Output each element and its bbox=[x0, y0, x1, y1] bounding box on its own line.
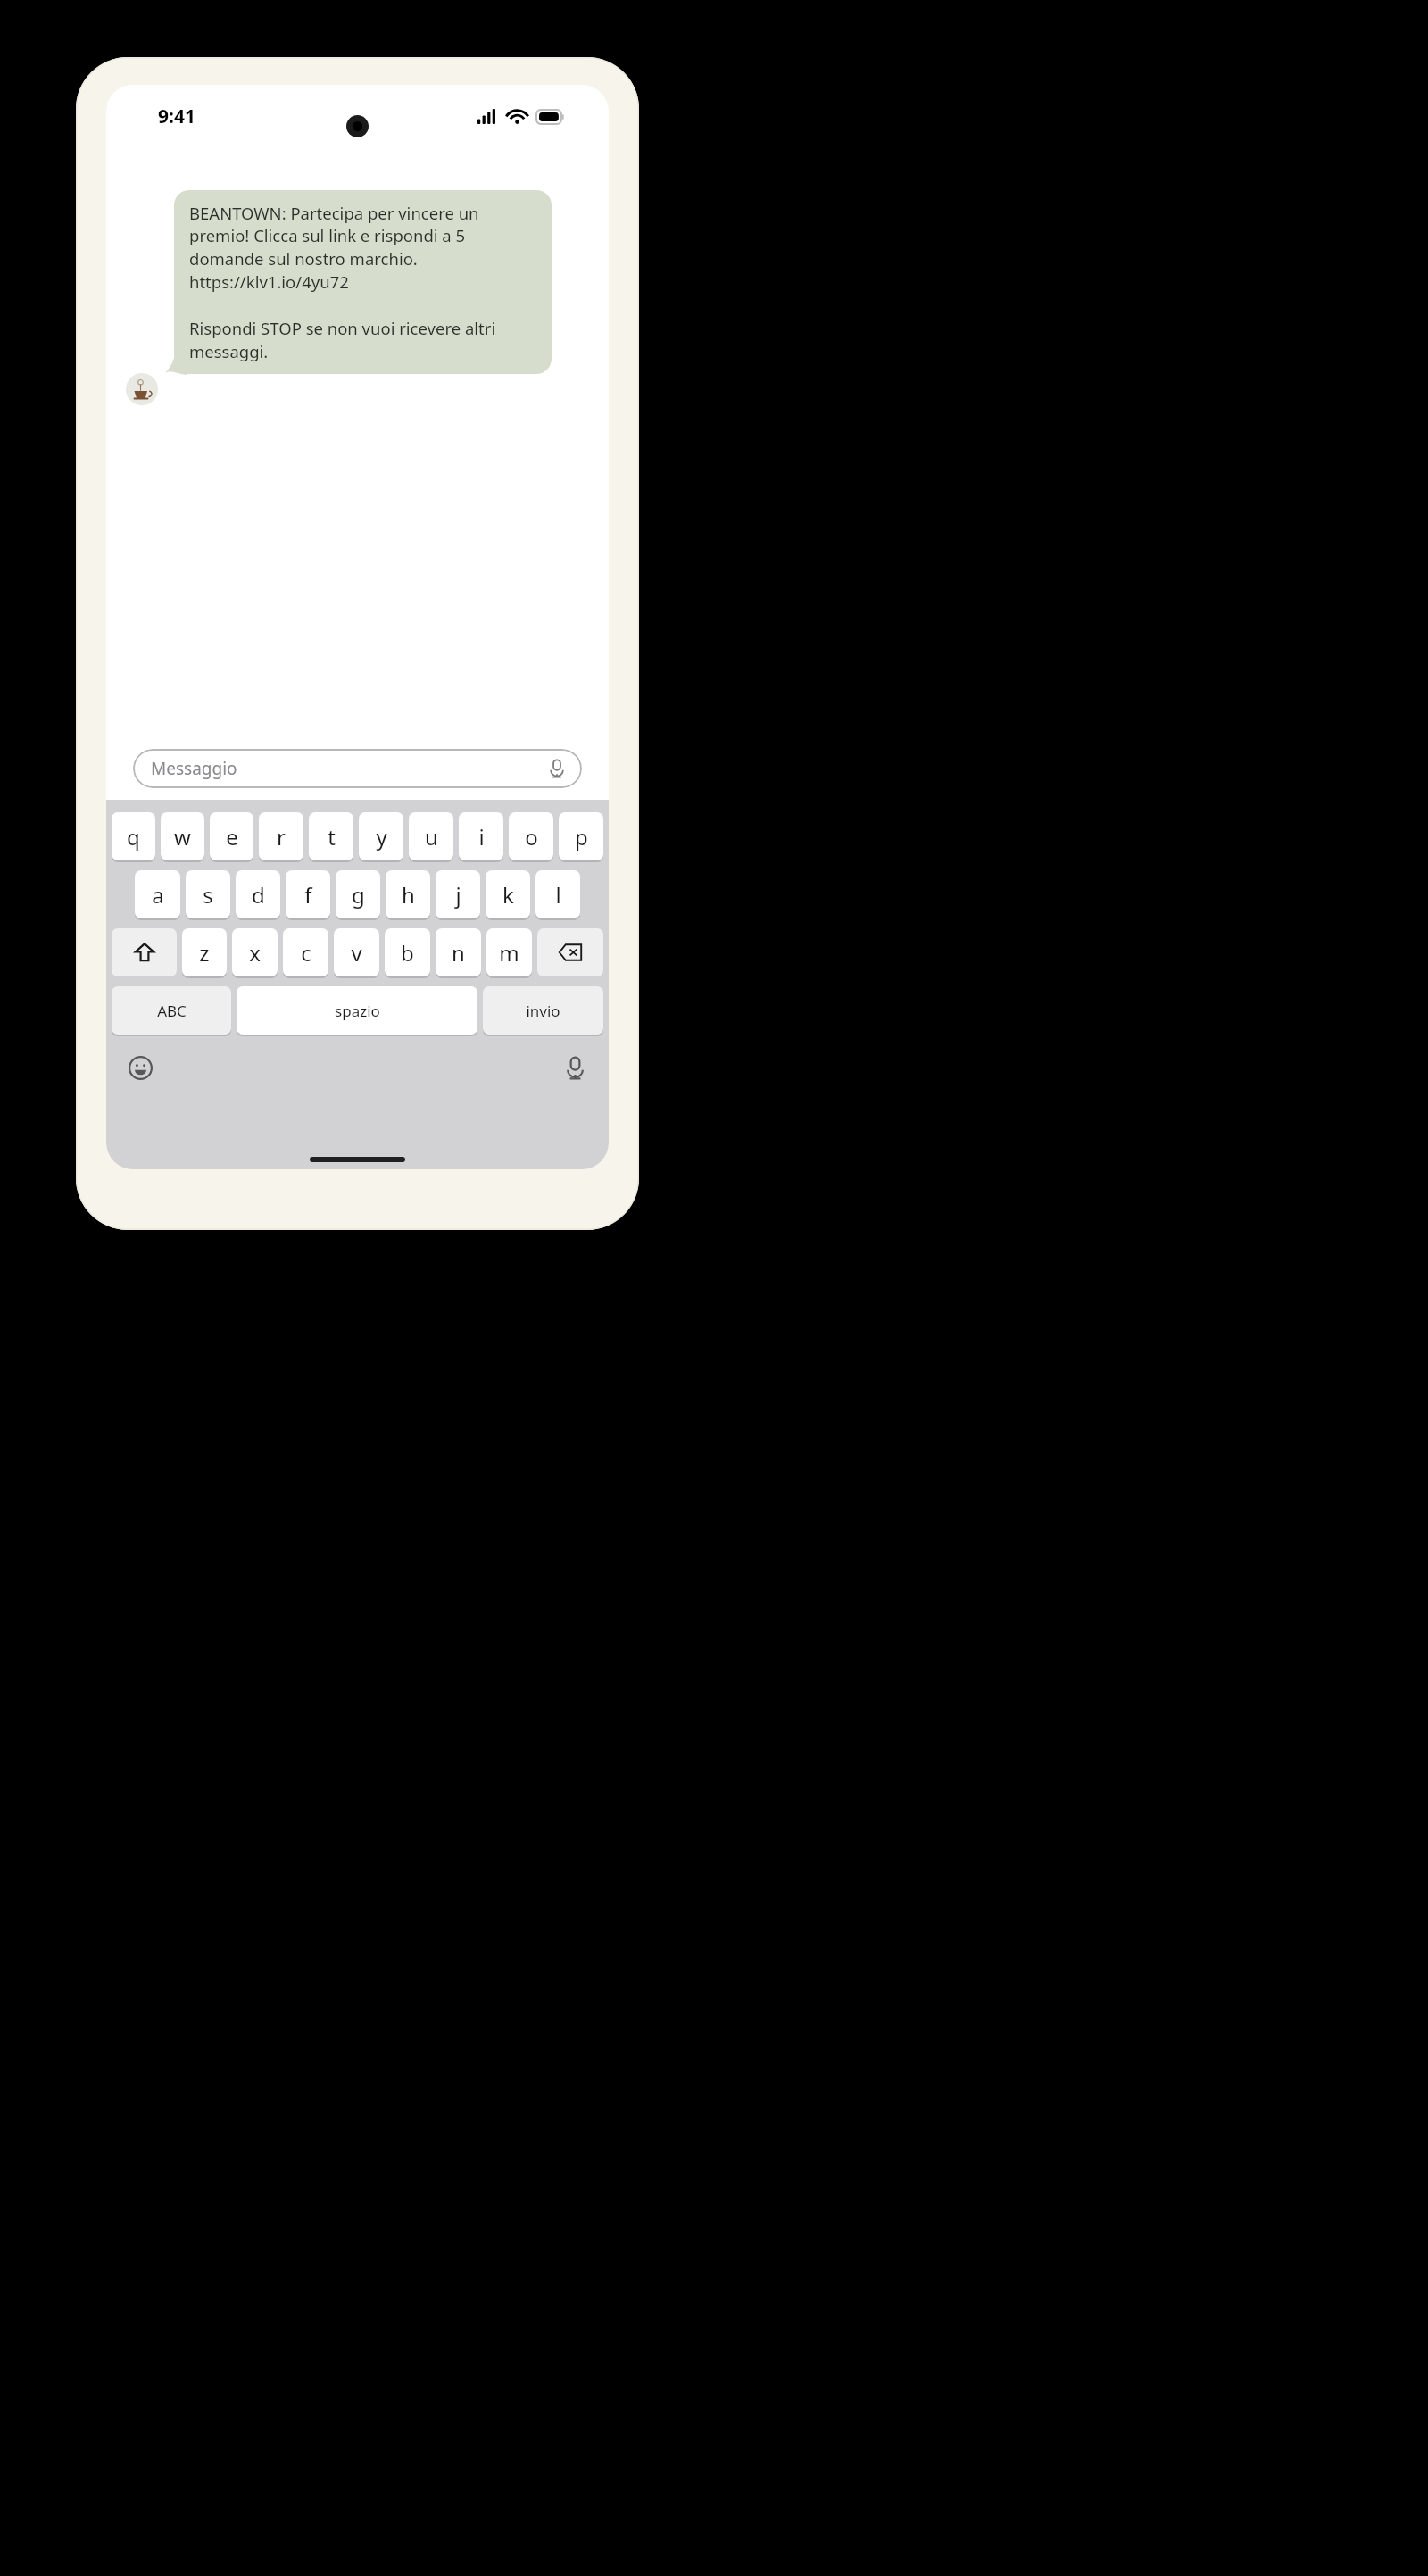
button[interactable]: y bbox=[359, 812, 403, 860]
button[interactable]: j bbox=[436, 870, 480, 918]
button[interactable]: BEANTOWN: Partecipa per vincere un premi… bbox=[174, 190, 552, 374]
button[interactable]: x bbox=[232, 928, 278, 976]
staticText: q bbox=[127, 822, 140, 852]
staticText: f bbox=[304, 880, 312, 910]
button[interactable]: h bbox=[386, 870, 430, 918]
staticText: r bbox=[277, 822, 286, 852]
button[interactable]: spazio bbox=[237, 986, 477, 1035]
button[interactable]: Backspace bbox=[537, 928, 603, 976]
staticText: a bbox=[152, 880, 164, 910]
button[interactable]: ABC bbox=[112, 986, 231, 1035]
button[interactable]: w bbox=[161, 812, 204, 860]
button[interactable]: d bbox=[236, 870, 280, 918]
button[interactable]: p bbox=[559, 812, 603, 860]
staticText: o bbox=[525, 822, 538, 852]
button[interactable]: s bbox=[186, 870, 230, 918]
staticText: spazio bbox=[335, 1001, 380, 1021]
button[interactable]: Voice input bbox=[544, 756, 569, 781]
button[interactable]: b bbox=[385, 928, 430, 976]
staticText: BEANTOWN: Partecipa per vincere un premi… bbox=[189, 202, 536, 362]
button[interactable]: Emoji bbox=[122, 1050, 158, 1085]
staticText: 9:41 bbox=[158, 104, 195, 129]
staticText: m bbox=[499, 938, 519, 968]
staticText: s bbox=[203, 880, 213, 910]
button[interactable]: f bbox=[286, 870, 330, 918]
button[interactable]: Shift bbox=[112, 928, 177, 976]
staticText: t bbox=[328, 822, 336, 852]
button[interactable]: v bbox=[334, 928, 379, 976]
button[interactable]: a bbox=[135, 870, 180, 918]
staticText: k bbox=[502, 880, 514, 910]
button[interactable]: r bbox=[259, 812, 303, 860]
button[interactable]: z bbox=[182, 928, 227, 976]
button[interactable]: c bbox=[283, 928, 328, 976]
button[interactable]: l bbox=[535, 870, 580, 918]
staticText: y bbox=[376, 822, 387, 852]
button[interactable]: Voice typing bbox=[557, 1050, 593, 1085]
staticText: b bbox=[401, 938, 414, 968]
staticText: g bbox=[352, 880, 365, 910]
staticText: h bbox=[402, 880, 415, 910]
staticText: Messaggio bbox=[151, 757, 237, 780]
staticText: j bbox=[455, 880, 461, 910]
staticText: ABC bbox=[157, 1001, 187, 1021]
staticText: w bbox=[174, 822, 191, 852]
button[interactable]: o bbox=[509, 812, 553, 860]
button[interactable]: g bbox=[336, 870, 380, 918]
staticText: e bbox=[226, 822, 238, 852]
button[interactable]: t bbox=[309, 812, 353, 860]
button[interactable]: i bbox=[459, 812, 503, 860]
staticText: c bbox=[301, 938, 311, 968]
staticText: p bbox=[575, 822, 588, 852]
staticText: d bbox=[252, 880, 265, 910]
button[interactable]: e bbox=[210, 812, 253, 860]
staticText: n bbox=[452, 938, 465, 968]
button[interactable]: q bbox=[112, 812, 155, 860]
staticText: z bbox=[199, 938, 210, 968]
button[interactable]: Contact avatar bbox=[126, 373, 158, 405]
button[interactable]: invio bbox=[483, 986, 603, 1035]
button[interactable]: n bbox=[436, 928, 481, 976]
button[interactable]: m bbox=[486, 928, 532, 976]
staticText: invio bbox=[526, 1001, 560, 1021]
button[interactable]: k bbox=[486, 870, 530, 918]
staticText: i bbox=[478, 822, 485, 852]
staticText: l bbox=[555, 880, 561, 910]
button[interactable]: Messaggio bbox=[133, 749, 582, 788]
staticText: v bbox=[351, 938, 362, 968]
button[interactable]: u bbox=[409, 812, 453, 860]
staticText: x bbox=[249, 938, 261, 968]
staticText: u bbox=[425, 822, 438, 852]
